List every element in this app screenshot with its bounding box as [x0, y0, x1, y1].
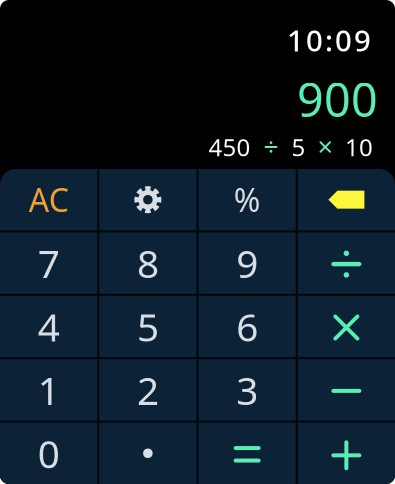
button[interactable]: Multiply — [298, 296, 395, 357]
button[interactable]: 0 — [0, 423, 97, 484]
staticText: 10:09 — [287, 20, 371, 59]
button[interactable]: 4 — [0, 296, 97, 357]
staticText: 4 — [38, 301, 60, 352]
button[interactable]: AC — [0, 169, 97, 230]
button[interactable]: 2 — [99, 359, 196, 421]
button[interactable]: 8 — [99, 232, 196, 294]
staticText: 5 — [291, 131, 305, 163]
button[interactable]: Equals — [198, 423, 296, 484]
staticText: 10 — [345, 131, 373, 163]
button[interactable]: % — [198, 169, 296, 230]
staticText: % — [234, 178, 261, 221]
staticText: 9 — [236, 237, 258, 289]
button[interactable]: 5 — [99, 296, 196, 357]
button[interactable]: Settings — [99, 169, 196, 230]
staticText: 5 — [137, 301, 159, 352]
staticText: 450 — [208, 131, 250, 163]
button[interactable]: Add — [298, 423, 395, 484]
staticText: 8 — [137, 237, 159, 289]
staticText: 1 — [38, 364, 60, 415]
button[interactable]: 7 — [0, 232, 97, 294]
button[interactable]: 3 — [198, 359, 296, 421]
button[interactable]: Decimal point — [99, 423, 196, 484]
button[interactable]: 6 — [198, 296, 296, 357]
button[interactable]: 9 — [198, 232, 296, 294]
button[interactable]: Subtract — [298, 359, 395, 421]
staticText: 3 — [236, 364, 258, 415]
staticText: 6 — [236, 301, 258, 352]
button[interactable]: Divide — [298, 232, 395, 294]
button[interactable]: Delete — [298, 169, 395, 230]
staticText: 7 — [38, 237, 60, 289]
staticText: 900 — [297, 68, 378, 130]
button[interactable]: 1 — [0, 359, 97, 421]
staticText: 0 — [38, 428, 60, 479]
staticText: AC — [29, 178, 69, 221]
staticText: 2 — [137, 364, 159, 415]
